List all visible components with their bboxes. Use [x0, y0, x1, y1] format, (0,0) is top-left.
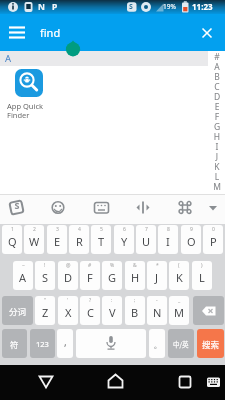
staticText: -	[156, 297, 158, 304]
button[interactable]: *	[147, 261, 167, 290]
staticText: C	[87, 305, 94, 320]
button[interactable]: 123	[30, 329, 55, 358]
staticText: S	[129, 2, 133, 12]
staticText: F	[212, 111, 222, 123]
button[interactable]	[197, 23, 217, 43]
staticText: "	[44, 297, 47, 304]
button[interactable]: 。	[149, 329, 165, 358]
staticText: A	[212, 61, 222, 73]
button[interactable]: -	[147, 296, 167, 325]
staticText: 19%	[163, 2, 176, 11]
button[interactable]: )	[192, 261, 212, 290]
staticText: N	[38, 1, 45, 13]
staticText: J	[155, 270, 159, 285]
staticText: W	[29, 234, 40, 249]
staticText: '	[67, 297, 69, 304]
button[interactable]: 7	[136, 225, 156, 254]
button[interactable]: 3	[47, 225, 67, 254]
button[interactable]: %	[102, 261, 122, 290]
staticText: ~	[22, 262, 25, 269]
button[interactable]: 2	[24, 225, 44, 254]
staticText: 123	[36, 339, 49, 349]
button[interactable]: 5	[91, 225, 111, 254]
button[interactable]	[193, 296, 224, 325]
button[interactable]: find	[40, 25, 61, 40]
staticText: 2	[33, 226, 36, 233]
button[interactable]: 0	[203, 225, 223, 254]
button[interactable]: 搜索	[197, 329, 224, 358]
staticText: I	[212, 141, 222, 153]
button[interactable]: "	[35, 296, 55, 325]
staticText: Y	[121, 234, 128, 249]
staticText: )	[201, 262, 203, 269]
staticText: N	[153, 305, 162, 320]
button[interactable]	[76, 329, 146, 358]
staticText: 5	[100, 226, 103, 233]
button[interactable]: :	[102, 296, 122, 325]
button[interactable]: #	[80, 261, 100, 290]
button[interactable]: (	[169, 261, 189, 290]
button[interactable]: ,	[57, 329, 73, 358]
staticText: R	[76, 234, 83, 249]
staticText: 8	[167, 226, 170, 233]
button[interactable]: 4	[69, 225, 89, 254]
staticText: F	[87, 270, 93, 285]
button[interactable]	[15, 69, 43, 97]
button[interactable]: 9	[181, 225, 201, 254]
staticText: D	[212, 91, 222, 103]
staticText: I	[166, 234, 170, 249]
button[interactable]: 1	[2, 225, 22, 254]
button[interactable]: &	[125, 261, 145, 290]
staticText: 9	[190, 226, 193, 233]
staticText: _	[178, 297, 181, 304]
staticText: 7	[145, 226, 148, 233]
staticText: &	[133, 262, 137, 269]
staticText: G	[212, 121, 222, 133]
button[interactable]: ~	[13, 261, 33, 290]
staticText: Q	[8, 234, 17, 249]
staticText: find	[40, 25, 61, 40]
staticText: (	[178, 262, 180, 269]
staticText: X	[65, 305, 72, 320]
staticText: 3	[56, 226, 59, 233]
button[interactable]: 符	[2, 329, 27, 358]
button[interactable]: 中/英	[168, 329, 194, 358]
button[interactable]	[7, 23, 27, 43]
staticText: S	[12, 199, 22, 211]
button[interactable]	[102, 368, 130, 396]
button[interactable]: !	[35, 261, 55, 290]
button[interactable]: @	[58, 261, 78, 290]
staticText: U	[142, 234, 151, 249]
button[interactable]	[171, 368, 199, 396]
staticText: O	[187, 234, 196, 249]
button[interactable]: 8	[158, 225, 178, 254]
staticText: ;	[134, 297, 136, 304]
staticText: K	[176, 270, 183, 285]
button[interactable]	[200, 368, 225, 396]
staticText: H	[212, 131, 222, 143]
staticText: 搜索	[202, 338, 220, 350]
staticText: 11:23	[192, 1, 213, 12]
button[interactable]: '	[58, 296, 78, 325]
button[interactable]: 6	[114, 225, 134, 254]
staticText: J	[212, 151, 222, 163]
staticText: 6	[123, 226, 126, 233]
staticText: 分词	[9, 305, 27, 317]
staticText: #	[212, 51, 222, 63]
staticText: H	[131, 270, 140, 285]
staticText: #	[88, 262, 92, 269]
button[interactable]: 分词	[2, 296, 33, 325]
button[interactable]: _	[169, 296, 189, 325]
staticText: B	[212, 71, 222, 83]
staticText: B	[131, 305, 139, 320]
staticText: K	[212, 161, 222, 173]
staticText: E	[212, 101, 222, 113]
staticText: App Quick Finder	[7, 101, 43, 121]
staticText: 中/英	[173, 339, 189, 348]
staticText: ?	[89, 297, 92, 304]
staticText: G	[108, 270, 117, 285]
staticText: *	[156, 262, 159, 269]
button[interactable]: ;	[125, 296, 145, 325]
button[interactable]: ?	[80, 296, 100, 325]
button[interactable]	[32, 368, 60, 396]
